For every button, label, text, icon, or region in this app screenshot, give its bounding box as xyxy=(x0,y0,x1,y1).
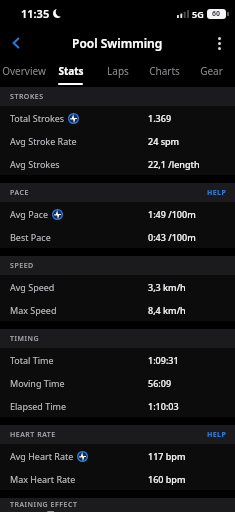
staticText: HELP xyxy=(207,188,227,198)
button[interactable]: Overview xyxy=(0,58,47,83)
button[interactable]: Total Strokes xyxy=(0,106,235,129)
button[interactable]: Avg Heart Rate xyxy=(0,444,235,467)
staticText: Avg Pace xyxy=(10,208,49,220)
staticText: 0:43 /100m xyxy=(148,231,196,243)
button[interactable]: Max Heart Rate xyxy=(0,467,235,490)
staticText: 60 xyxy=(212,9,221,19)
button[interactable]: Gear xyxy=(188,58,235,83)
staticText: 56:09 xyxy=(148,377,172,389)
staticText: 8,4 km/h xyxy=(148,304,186,316)
button[interactable]: Moving Time xyxy=(0,371,235,394)
button[interactable]: More options xyxy=(205,29,233,57)
button[interactable]: More info xyxy=(68,113,79,124)
staticText: Avg Heart Rate xyxy=(10,450,74,462)
button[interactable]: HELP xyxy=(207,188,227,198)
staticText: 3,3 km/h xyxy=(148,281,186,293)
staticText: Avg Strokes xyxy=(10,158,60,170)
staticText: PACE xyxy=(10,188,29,198)
staticText: Overview xyxy=(2,64,46,78)
staticText: 1:49 /100m xyxy=(148,208,196,220)
staticText: 1:09:31 xyxy=(148,354,179,366)
staticText: Gear xyxy=(200,64,223,78)
staticText: 1.369 xyxy=(148,112,172,124)
staticText: HEART RATE xyxy=(10,430,56,440)
button[interactable]: Elapsed Time xyxy=(0,394,235,417)
staticText: Avg Speed xyxy=(10,281,55,293)
staticText: Charts xyxy=(149,64,180,78)
button[interactable]: Avg Pace xyxy=(0,202,235,225)
button[interactable]: Avg Speed xyxy=(0,275,235,298)
staticText: 117 bpm xyxy=(148,450,186,462)
staticText: STROKES xyxy=(10,92,44,102)
staticText: Avg Stroke Rate xyxy=(10,135,77,147)
staticText: TIMING xyxy=(10,334,40,344)
button[interactable]: Laps xyxy=(94,58,141,83)
button[interactable]: Max Speed xyxy=(0,298,235,321)
staticText: 1:10:03 xyxy=(148,400,179,412)
staticText: TRAINING EFFECT xyxy=(10,500,78,510)
staticText: Max Speed xyxy=(10,304,57,316)
staticText: Elapsed Time xyxy=(10,400,66,412)
staticText: Total Time xyxy=(10,354,54,366)
button[interactable]: Back xyxy=(2,29,30,57)
staticText: 24 spm xyxy=(148,135,180,147)
staticText: Best Pace xyxy=(10,231,51,243)
staticText: Stats xyxy=(58,64,84,78)
staticText: 160 bpm xyxy=(148,473,186,485)
staticText: 5G xyxy=(192,8,204,20)
button[interactable]: HELP xyxy=(207,430,227,440)
button[interactable]: Best Pace xyxy=(0,225,235,248)
button[interactable]: Charts xyxy=(141,58,188,83)
button[interactable]: Stats xyxy=(47,58,94,83)
staticText: 11:35 xyxy=(21,6,50,21)
button[interactable]: More info xyxy=(77,451,88,462)
staticText: SPEED xyxy=(10,261,34,271)
button[interactable]: Avg Stroke Rate xyxy=(0,129,235,152)
staticText: Laps xyxy=(107,64,129,78)
staticText: Pool Swimming xyxy=(72,35,163,51)
button[interactable]: Avg Strokes xyxy=(0,152,235,175)
button[interactable]: Total Time xyxy=(0,348,235,371)
staticText: HELP xyxy=(207,430,227,440)
staticText: Moving Time xyxy=(10,377,65,389)
button[interactable]: More info xyxy=(52,209,63,220)
staticText: Max Heart Rate xyxy=(10,473,76,485)
staticText: Total Strokes xyxy=(10,112,65,124)
staticText: 22,1 /length xyxy=(148,158,200,170)
